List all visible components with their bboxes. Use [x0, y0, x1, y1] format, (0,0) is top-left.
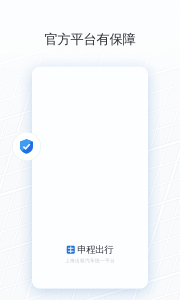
staticText: 官方平台有保障	[44, 31, 135, 48]
staticText: 申程出行	[77, 244, 113, 256]
staticText: 上海出租汽车统一平台	[65, 258, 115, 264]
